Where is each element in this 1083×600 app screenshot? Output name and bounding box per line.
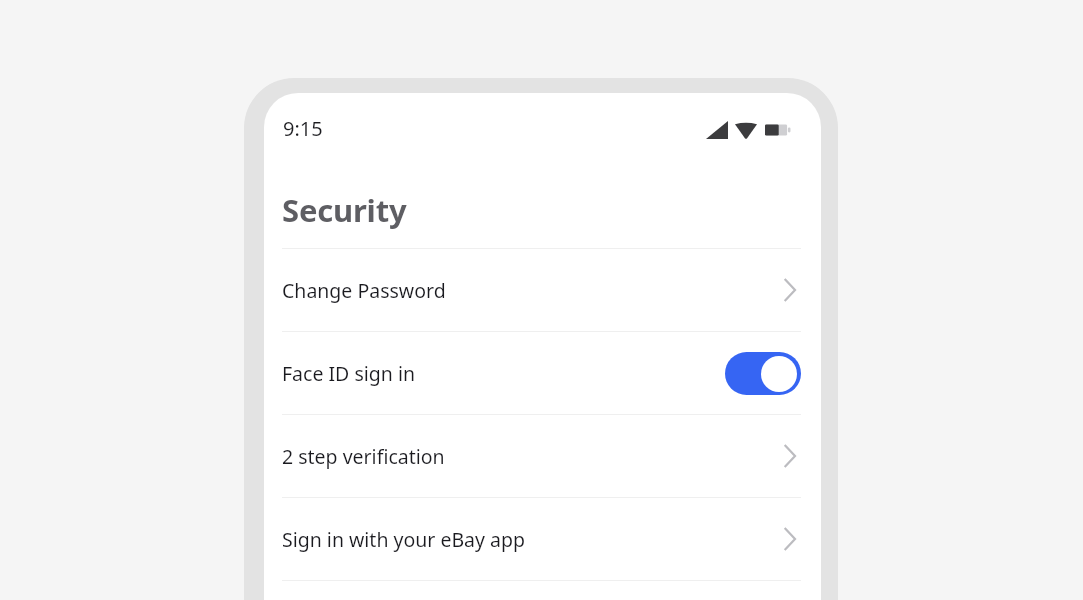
button[interactable]: 2 step verification	[264, 415, 821, 497]
button[interactable]: Face ID sign in	[264, 332, 821, 414]
staticText: Security	[282, 189, 407, 231]
staticText: 9:15	[283, 115, 323, 142]
button[interactable]: Open	[779, 524, 801, 554]
button[interactable]: Change Password	[264, 249, 821, 331]
staticText: Change Password	[282, 277, 779, 304]
button[interactable]: Face ID sign in toggle, on	[725, 352, 801, 395]
button[interactable]: Sign in with your eBay app	[264, 498, 821, 580]
staticText: Face ID sign in	[282, 360, 725, 387]
button[interactable]: Open	[779, 275, 801, 305]
staticText: 2 step verification	[282, 443, 779, 470]
button[interactable]: Open	[779, 441, 801, 471]
staticText: Sign in with your eBay app	[282, 526, 779, 553]
